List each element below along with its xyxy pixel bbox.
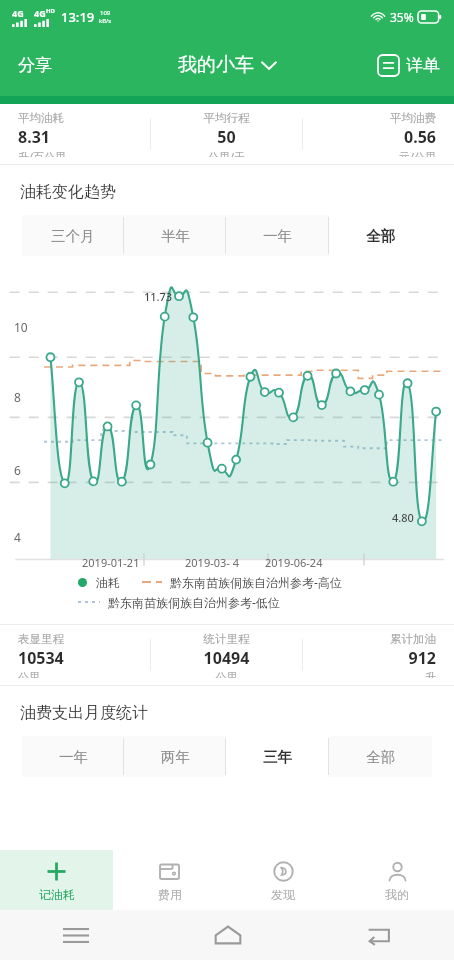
staticText: 109 xyxy=(100,9,111,17)
button[interactable]: 两年 xyxy=(124,736,226,777)
button[interactable]: 表显里程 xyxy=(0,625,150,685)
staticText: 黔东南苗族侗族自治州参考-高位 xyxy=(170,574,342,590)
button[interactable]: Back xyxy=(303,910,454,960)
button[interactable]: 一年 xyxy=(226,215,329,256)
button[interactable]: 半年 xyxy=(124,215,226,256)
button[interactable]: 发现 xyxy=(226,850,340,910)
staticText: 平均油费 xyxy=(321,111,436,125)
staticText: 油耗 xyxy=(96,575,120,590)
staticText: 平均行程 xyxy=(169,111,284,125)
button[interactable]: Home xyxy=(152,910,303,960)
staticText: 半年 xyxy=(161,227,190,245)
button[interactable]: 统计里程 xyxy=(151,625,302,685)
staticText: 公里/天 xyxy=(169,149,284,157)
staticText: 4.80 xyxy=(392,510,414,525)
staticText: 912 xyxy=(321,647,436,669)
button[interactable]: 我的 xyxy=(340,850,454,910)
staticText: 公里 xyxy=(169,670,284,678)
button[interactable]: 全部 xyxy=(329,215,432,256)
button[interactable]: Recents xyxy=(0,910,152,960)
staticText: 2019-06-24 xyxy=(265,555,323,570)
staticText: HD xyxy=(46,7,55,15)
staticText: 10534 xyxy=(18,647,132,669)
staticText: 50 xyxy=(169,126,284,148)
staticText: 公里 xyxy=(18,670,132,678)
staticText: 三个月 xyxy=(51,227,95,245)
staticText: 累计加油 xyxy=(321,632,436,646)
staticText: 记油耗 xyxy=(39,887,75,902)
staticText: 油耗变化趋势 xyxy=(20,182,116,202)
button[interactable]: 平均油费 xyxy=(303,104,454,164)
button[interactable]: 我的小车 xyxy=(170,47,284,83)
staticText: 元/公里 xyxy=(321,149,436,157)
button[interactable]: 全部 xyxy=(329,736,432,777)
staticText: 4G xyxy=(34,7,46,19)
staticText: 全部 xyxy=(366,227,395,245)
staticText: 三年 xyxy=(263,748,292,766)
staticText: 我的 xyxy=(385,887,409,902)
staticText: 统计里程 xyxy=(169,632,284,646)
staticText: 8.31 xyxy=(18,126,132,148)
button[interactable]: 三年 xyxy=(226,736,329,777)
staticText: 升/百公里 xyxy=(18,149,132,157)
staticText: 2019-01-21 xyxy=(82,555,140,570)
staticText: 6 xyxy=(14,462,21,478)
staticText: 4 xyxy=(14,529,21,545)
button[interactable]: 平均行程 xyxy=(151,104,302,164)
staticText: 油费支出月度统计 xyxy=(20,703,148,723)
staticText: 0.56 xyxy=(321,126,436,148)
staticText: 一年 xyxy=(263,227,292,245)
staticText: 黔东南苗族侗族自治州参考-低位 xyxy=(108,594,280,610)
staticText: 8 xyxy=(14,389,21,405)
staticText: 分享 xyxy=(18,55,52,76)
staticText: 两年 xyxy=(161,748,190,766)
staticText: 35% xyxy=(390,9,414,25)
staticText: 11.73 xyxy=(144,289,173,304)
button[interactable]: 记油耗 xyxy=(0,850,113,910)
other: 详单 xyxy=(378,55,399,76)
button[interactable]: 一年 xyxy=(22,736,124,777)
staticText: 我的小车 xyxy=(178,53,254,77)
button[interactable]: 分享 xyxy=(0,34,70,96)
staticText: 10494 xyxy=(169,647,284,669)
button[interactable]: 费用 xyxy=(113,850,226,910)
staticText: 升 xyxy=(321,670,436,678)
staticText: 平均油耗 xyxy=(18,111,132,125)
staticText: 全部 xyxy=(366,748,395,766)
button[interactable]: 详单 xyxy=(378,34,454,96)
button[interactable]: 三个月 xyxy=(22,215,124,256)
staticText: 4G xyxy=(12,7,24,19)
staticText: 2019-03- 4 xyxy=(185,555,239,570)
staticText: 一年 xyxy=(59,748,88,766)
button[interactable]: 累计加油 xyxy=(303,625,454,685)
staticText: kB/s xyxy=(99,17,112,25)
staticText: 费用 xyxy=(158,887,182,902)
staticText: 发现 xyxy=(271,887,295,902)
staticText: 详单 xyxy=(406,55,440,76)
staticText: 10 xyxy=(14,319,28,335)
button[interactable]: 平均油耗 xyxy=(0,104,150,164)
staticText: 表显里程 xyxy=(18,632,132,646)
staticText: 13:19 xyxy=(61,8,95,26)
